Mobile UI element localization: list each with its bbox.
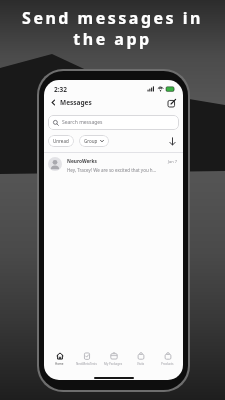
staticText: Products xyxy=(161,362,174,366)
button[interactable]: Products xyxy=(154,352,181,366)
button[interactable]: Unread xyxy=(48,135,74,147)
staticText: Home xyxy=(55,362,64,366)
staticText: 2:32 xyxy=(54,85,67,94)
button[interactable]: NextMetaTests xyxy=(73,352,100,366)
staticText: Messages xyxy=(60,98,92,107)
staticText: Search messages xyxy=(62,119,103,126)
staticText: Visits xyxy=(137,362,145,366)
button[interactable] xyxy=(168,99,176,107)
button[interactable]: Group xyxy=(79,135,109,147)
staticText: NeuroWerks xyxy=(67,158,97,165)
staticText: Send messages in the app xyxy=(0,7,225,50)
staticText: My Packages xyxy=(104,362,123,366)
button[interactable] xyxy=(50,99,57,106)
staticText: Group xyxy=(84,138,98,144)
staticText: NextMetaTests xyxy=(76,362,97,366)
button[interactable] xyxy=(168,137,177,146)
staticText: Hey, Tracey! We are so excited that you … xyxy=(67,167,157,173)
button[interactable]: NeuroWerks xyxy=(44,153,183,173)
staticText: Unread xyxy=(53,138,69,144)
button[interactable]: Visits xyxy=(127,352,154,366)
button[interactable]: My Packages xyxy=(100,352,127,366)
staticText: Jan 7 xyxy=(168,159,178,164)
button[interactable]: Home xyxy=(46,352,73,366)
button[interactable]: Search messages xyxy=(48,115,179,130)
